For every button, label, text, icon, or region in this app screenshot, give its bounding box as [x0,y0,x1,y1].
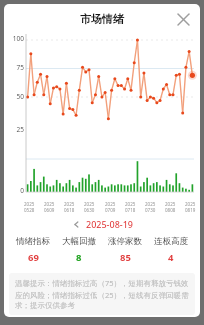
staticText: 0718 [125,207,136,213]
staticText: 2025-08-19 [86,218,133,230]
staticText: 4 [168,251,174,264]
button[interactable]: 涨停家数 [102,234,148,266]
staticText: 25 [6,125,24,134]
staticText: 2025 [125,201,136,207]
staticText: 2025 [185,201,196,207]
staticText: 0618 [64,207,75,213]
staticText: 2025 [84,201,95,207]
staticText: 市场情绪 [80,12,124,26]
staticText: 50 [6,92,24,101]
staticText: 2025 [44,201,55,207]
staticText: 2025 [145,201,156,207]
staticText: 2025 [165,201,176,207]
button[interactable]: 大幅回撤 [56,234,102,266]
staticText: 涨停家数 [108,236,142,247]
staticText: 0819 [185,207,196,213]
staticText: 69 [28,251,39,264]
button[interactable]: Close [173,9,193,29]
staticText: 0609 [44,207,55,213]
staticText: 2025 [64,201,75,207]
staticText: 情绪指标 [16,236,50,247]
staticText: 0 [6,186,24,195]
staticText: 0709 [105,207,116,213]
staticText: 温馨提示：情绪指标过高（75），短期有释放亏钱效应的风险；情绪指标过低（25），… [15,278,189,310]
staticText: 连板高度 [154,236,188,247]
button[interactable]: 情绪指标 [10,234,56,266]
staticText: 0630 [84,207,95,213]
staticText: 0730 [145,207,156,213]
staticText: 85 [120,251,131,264]
staticText: 0528 [24,207,35,213]
staticText: 0808 [165,207,176,213]
staticText: 8 [76,251,82,264]
staticText: 2025 [105,201,116,207]
staticText: 75 [6,63,24,72]
staticText: 大幅回撤 [62,236,96,247]
staticText: 100 [6,34,24,43]
button[interactable]: 连板高度 [148,234,194,266]
staticText: 2025 [24,201,35,207]
button[interactable]: 2025-08-19 [68,216,137,232]
